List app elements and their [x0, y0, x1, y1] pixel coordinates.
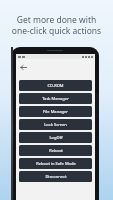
staticText: Lock Screen [44, 122, 67, 127]
staticText: File Manager [43, 109, 68, 114]
button[interactable]: Back [18, 62, 29, 73]
button[interactable]: LogOff [19, 132, 92, 143]
staticText: Get more done with one-click quick actio… [6, 14, 107, 36]
staticText: Reboot [49, 148, 63, 153]
staticText: LogOff [49, 135, 63, 140]
button[interactable]: File Manager [19, 106, 92, 117]
button[interactable]: Disconnect [19, 171, 92, 182]
staticText: CD-ROM [47, 83, 64, 88]
staticText: Disconnect [45, 174, 67, 179]
button[interactable]: Reboot [19, 145, 92, 156]
staticText: Reboot in Safe Mode [36, 161, 76, 166]
button[interactable]: Reboot in Safe Mode [19, 158, 92, 169]
button[interactable]: Task Manager [19, 93, 92, 104]
button[interactable]: Lock Screen [19, 119, 92, 130]
staticText: Task Manager [42, 96, 69, 101]
button[interactable]: CD-ROM [19, 80, 92, 91]
